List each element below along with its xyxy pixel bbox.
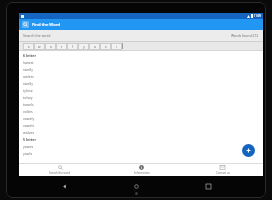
button[interactable]: lowest [23, 59, 263, 66]
button[interactable]: tylose [23, 87, 263, 94]
button[interactable]: a [89, 43, 100, 50]
button[interactable]: wolves [23, 129, 263, 136]
button[interactable]: Add word [242, 144, 255, 157]
staticText: e [28, 45, 30, 49]
staticText: t [61, 45, 63, 49]
staticText: a [94, 45, 96, 49]
staticText: lowest [23, 60, 34, 65]
button[interactable]: t [56, 43, 67, 50]
button[interactable]: vowely [23, 115, 263, 122]
button[interactable]: e [23, 43, 34, 50]
button[interactable]: w [34, 43, 45, 50]
button[interactable]: tolsey [23, 94, 263, 101]
button[interactable]: towels [23, 101, 263, 108]
staticText: Search the word [23, 33, 51, 38]
staticText: tylose [23, 88, 33, 93]
staticText: swelly [23, 67, 33, 72]
staticText: Search the word [49, 171, 71, 175]
button[interactable]: 5 letter [23, 136, 263, 143]
button[interactable]: Back [28, 180, 100, 192]
button[interactable]: 6 letter [23, 52, 263, 59]
staticText: e [105, 45, 107, 49]
staticText: 5 letter [23, 137, 37, 142]
button[interactable]: Recent apps [172, 180, 244, 192]
button[interactable]: i [111, 43, 122, 50]
button[interactable]: Information [101, 164, 182, 176]
staticText: Find the Word [32, 22, 61, 28]
staticText: Contact us [216, 171, 230, 175]
button[interactable]: e [100, 43, 111, 50]
staticText: Words found:212 [231, 33, 259, 38]
staticText: yowls [23, 151, 33, 156]
button[interactable]: swelly [23, 80, 263, 87]
button[interactable]: y [78, 43, 89, 50]
button[interactable]: Search the word [19, 164, 101, 176]
staticText: w [38, 45, 41, 49]
button[interactable]: vowels [23, 122, 263, 129]
staticText: towels [23, 102, 34, 107]
staticText: tolsey [23, 95, 33, 100]
staticText: 11:09 [254, 14, 261, 18]
button[interactable]: Search the word [23, 33, 231, 38]
button[interactable]: voltes [23, 108, 263, 115]
staticText: Information [134, 171, 150, 175]
staticText: 6 letter [23, 53, 37, 58]
staticText: y [83, 45, 85, 49]
staticText: yowes [23, 144, 34, 149]
staticText: f [72, 45, 74, 49]
button[interactable]: Home [100, 180, 172, 192]
button[interactable]: yowls [23, 150, 263, 157]
staticText: vowely [23, 116, 35, 121]
button[interactable]: yowes [23, 143, 263, 150]
staticText: o [50, 45, 52, 49]
button[interactable]: swelly [23, 66, 263, 73]
button[interactable]: owlets [23, 73, 263, 80]
button[interactable]: o [45, 43, 56, 50]
staticText: voltes [23, 109, 33, 114]
button[interactable]: Contact us [182, 164, 263, 176]
staticText: i [116, 45, 117, 49]
staticText: vowels [23, 123, 35, 128]
button[interactable]: f [67, 43, 78, 50]
staticText: owlets [23, 74, 34, 79]
staticText: swelly [23, 81, 33, 86]
staticText: wolves [23, 130, 35, 135]
